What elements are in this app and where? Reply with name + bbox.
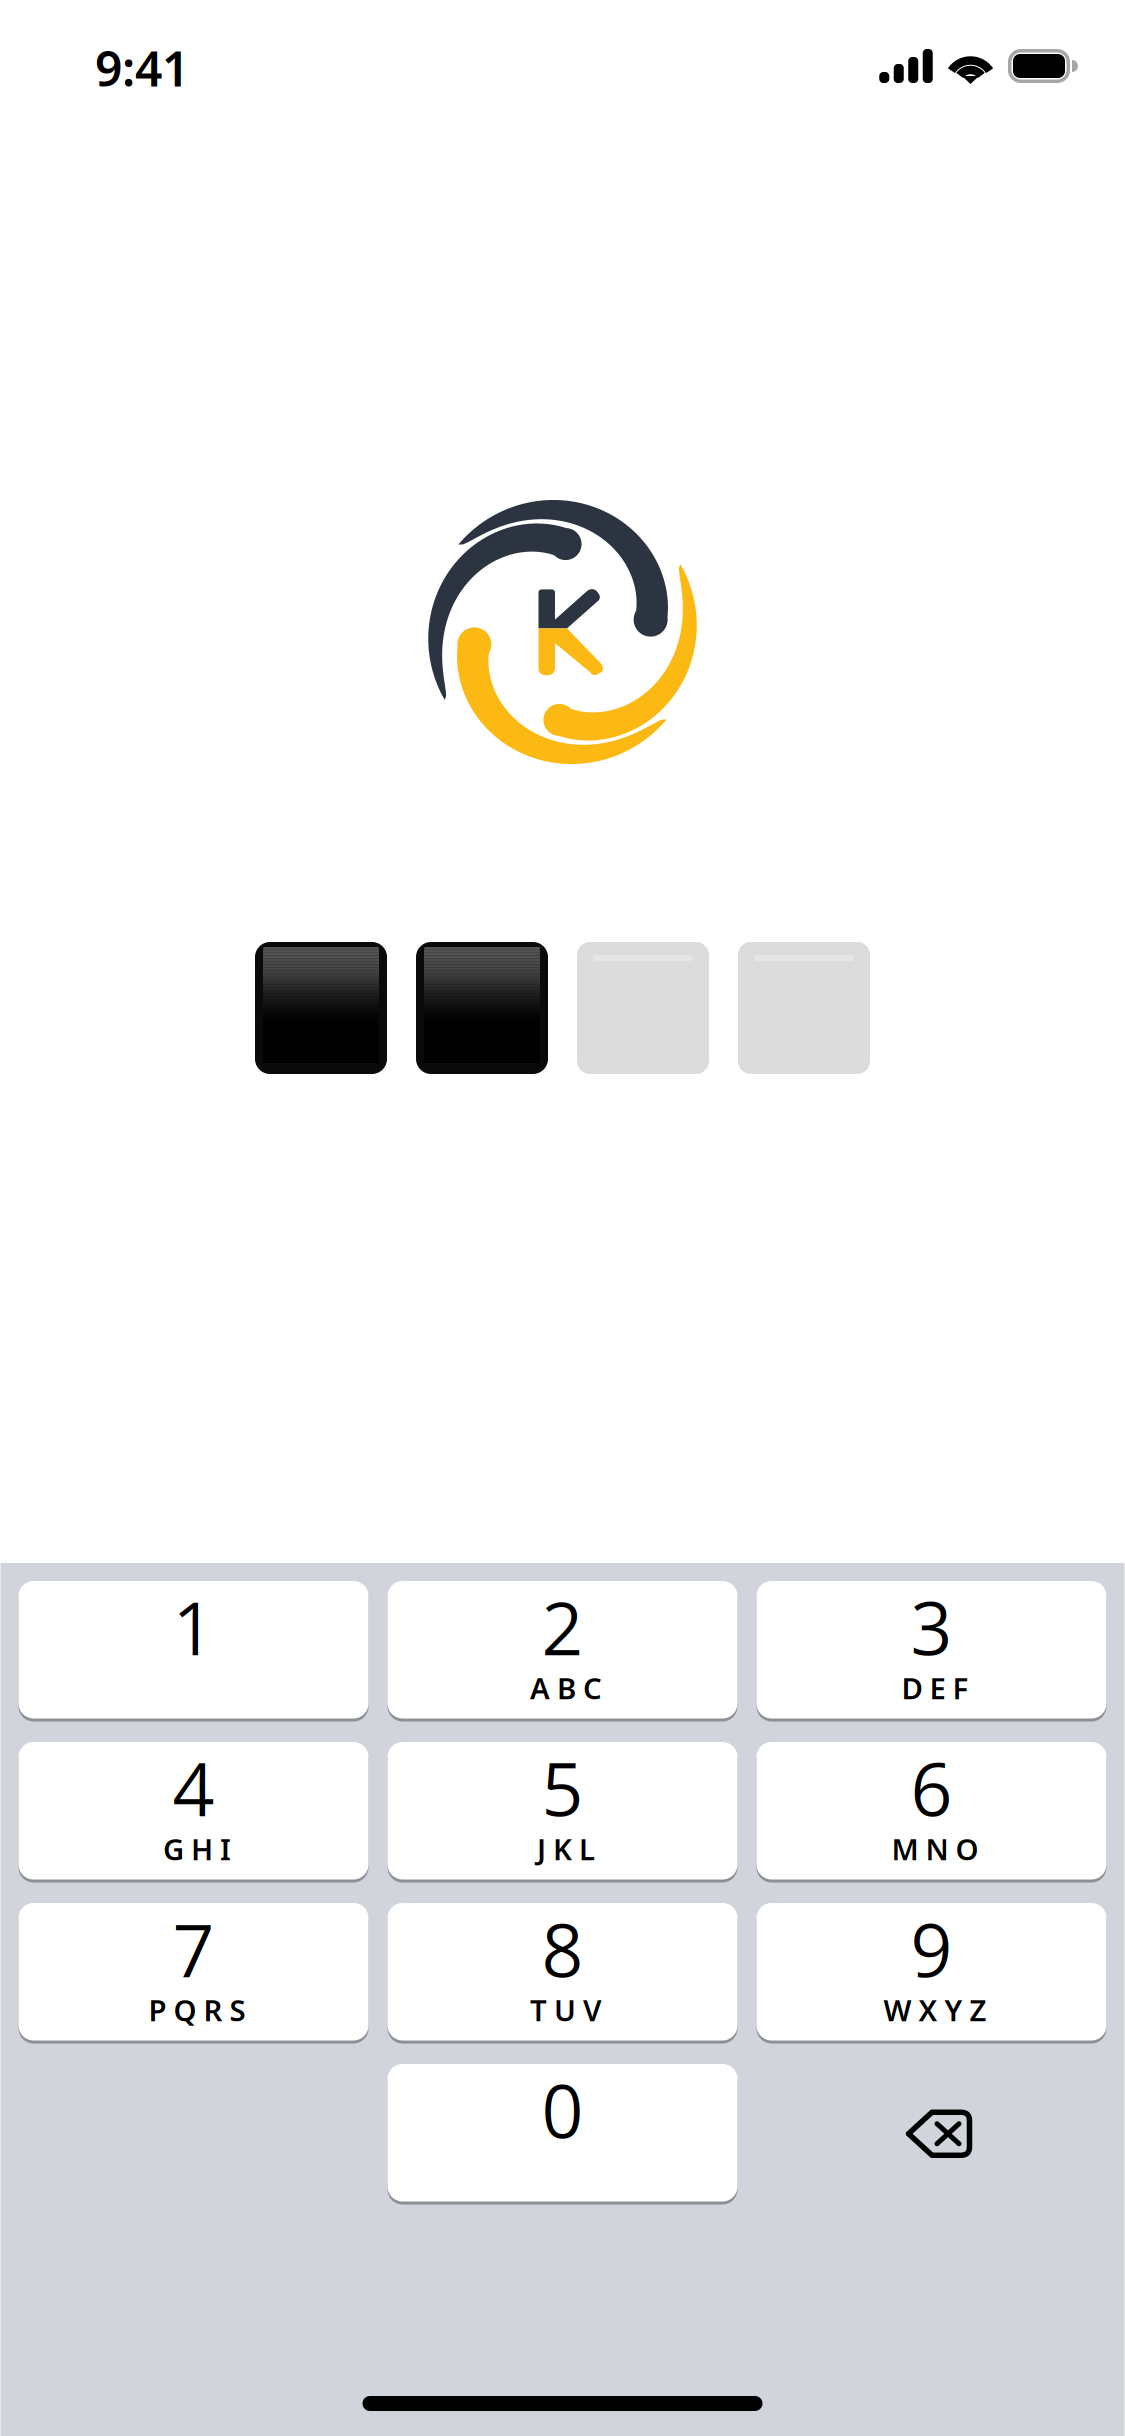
button[interactable]: 4 xyxy=(18,1742,368,1879)
staticText: 3 xyxy=(910,1577,952,1677)
staticText: WXYZ xyxy=(883,1990,986,2029)
staticText: 4 xyxy=(172,1738,214,1838)
staticText: 5 xyxy=(541,1738,583,1838)
staticText: PQRS xyxy=(148,1990,245,2029)
button[interactable]: 7 xyxy=(18,1903,368,2040)
button[interactable]: 1 xyxy=(18,1581,368,1718)
staticText: 8 xyxy=(541,1899,583,1999)
staticText: 7 xyxy=(172,1899,214,1999)
staticText: 1 xyxy=(172,1577,214,1677)
button[interactable]: 8 xyxy=(387,1903,737,2040)
button[interactable]: 3 xyxy=(756,1581,1106,1718)
staticText: 9:41 xyxy=(95,36,189,100)
staticText: MNO xyxy=(891,1829,978,1868)
staticText: ABC xyxy=(530,1668,602,1707)
staticText: JKL xyxy=(537,1829,595,1868)
staticText: 0 xyxy=(541,2060,583,2160)
button[interactable]: 6 xyxy=(756,1742,1106,1879)
staticText: 2 xyxy=(541,1577,583,1677)
button[interactable]: 9 xyxy=(756,1903,1106,2040)
staticText: TUV xyxy=(530,1990,602,2029)
staticText: GHI xyxy=(163,1829,231,1868)
staticText: DEF xyxy=(901,1668,968,1707)
button[interactable]: 0 xyxy=(387,2064,737,2201)
staticText: 6 xyxy=(910,1738,952,1838)
button[interactable]: Delete xyxy=(756,2064,1106,2201)
button[interactable]: 2 xyxy=(387,1581,737,1718)
button[interactable]: 5 xyxy=(387,1742,737,1879)
staticText: 9 xyxy=(910,1899,952,1999)
